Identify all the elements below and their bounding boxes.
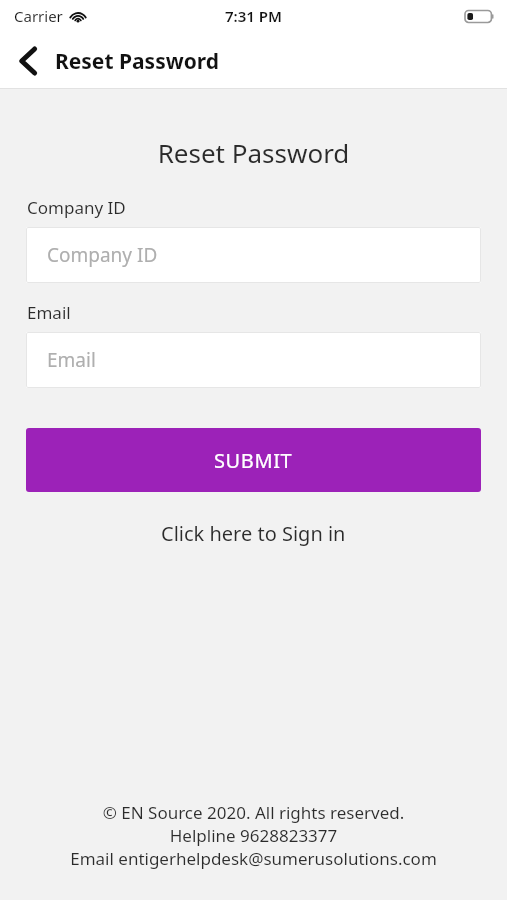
staticText: Email entigerhelpdesk@sumerusolutions.co…: [0, 847, 507, 870]
staticText: Reset Password: [0, 135, 507, 170]
button[interactable]: Click here to Sign in: [0, 512, 507, 555]
staticText: Company ID: [27, 196, 126, 219]
staticText: Helpline 9628823377: [0, 824, 507, 847]
staticText: Click here to Sign in: [161, 520, 346, 547]
staticText: 7:31 PM: [225, 6, 282, 26]
staticText: Reset Password: [55, 47, 220, 76]
staticText: Company ID: [47, 242, 158, 268]
button[interactable]: Back: [10, 43, 46, 79]
staticText: Email: [27, 301, 71, 324]
staticText: Email: [47, 347, 96, 373]
button[interactable]: SUBMIT: [26, 428, 481, 492]
button[interactable]: Company ID: [26, 227, 481, 283]
staticText: SUBMIT: [214, 447, 293, 474]
staticText: Carrier: [14, 6, 63, 26]
button[interactable]: Email: [26, 332, 481, 388]
staticText: © EN Source 2020. All rights reserved.: [0, 801, 507, 824]
